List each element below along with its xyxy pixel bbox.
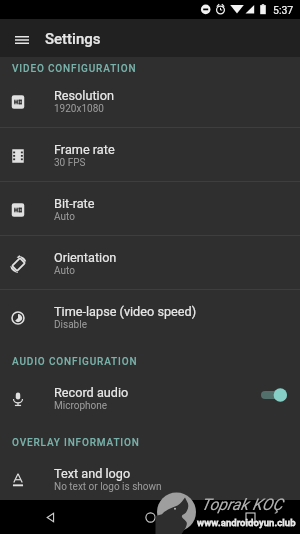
staticText: Auto bbox=[54, 265, 75, 277]
staticText: Auto bbox=[54, 211, 75, 223]
staticText: Orientation bbox=[54, 250, 117, 265]
staticText: Toprak KOÇ bbox=[201, 495, 283, 514]
button[interactable]: Home bbox=[100, 500, 200, 534]
button[interactable]: Time-lapse (video speed) bbox=[0, 290, 300, 344]
staticText: Record audio bbox=[54, 385, 129, 400]
staticText: OVERLAY INFORMATION bbox=[12, 437, 140, 449]
button[interactable]: Text and logo bbox=[0, 452, 300, 500]
staticText: Time-lapse (video speed) bbox=[54, 304, 197, 319]
button[interactable]: Orientation bbox=[0, 236, 300, 289]
button[interactable]: Bit-rate bbox=[0, 182, 300, 235]
staticText: AUDIO CONFIGURATION bbox=[12, 356, 138, 368]
staticText: www.androidoyun.club bbox=[197, 517, 296, 528]
button[interactable]: Recent apps bbox=[200, 500, 300, 534]
staticText: 30 FPS bbox=[54, 157, 86, 169]
button[interactable]: Open navigation menu bbox=[0, 19, 38, 57]
button[interactable]: Resolution bbox=[0, 74, 300, 127]
staticText: Microphone bbox=[54, 400, 108, 412]
staticText: Resolution bbox=[54, 88, 114, 103]
staticText: 5:37 bbox=[273, 4, 294, 16]
button[interactable]: Frame rate bbox=[0, 128, 300, 181]
staticText: Settings bbox=[45, 30, 101, 48]
staticText: Text and logo bbox=[54, 466, 131, 481]
staticText: Bit-rate bbox=[54, 196, 95, 211]
staticText: No text or logo is shown bbox=[54, 481, 162, 493]
button[interactable]: Record audio bbox=[0, 371, 300, 425]
staticText: VIDEO CONFIGURATION bbox=[12, 63, 137, 74]
staticText: Disable bbox=[54, 319, 87, 331]
staticText: Frame rate bbox=[54, 142, 115, 157]
staticText: 1920x1080 bbox=[54, 103, 104, 115]
button[interactable]: Back bbox=[0, 500, 100, 534]
